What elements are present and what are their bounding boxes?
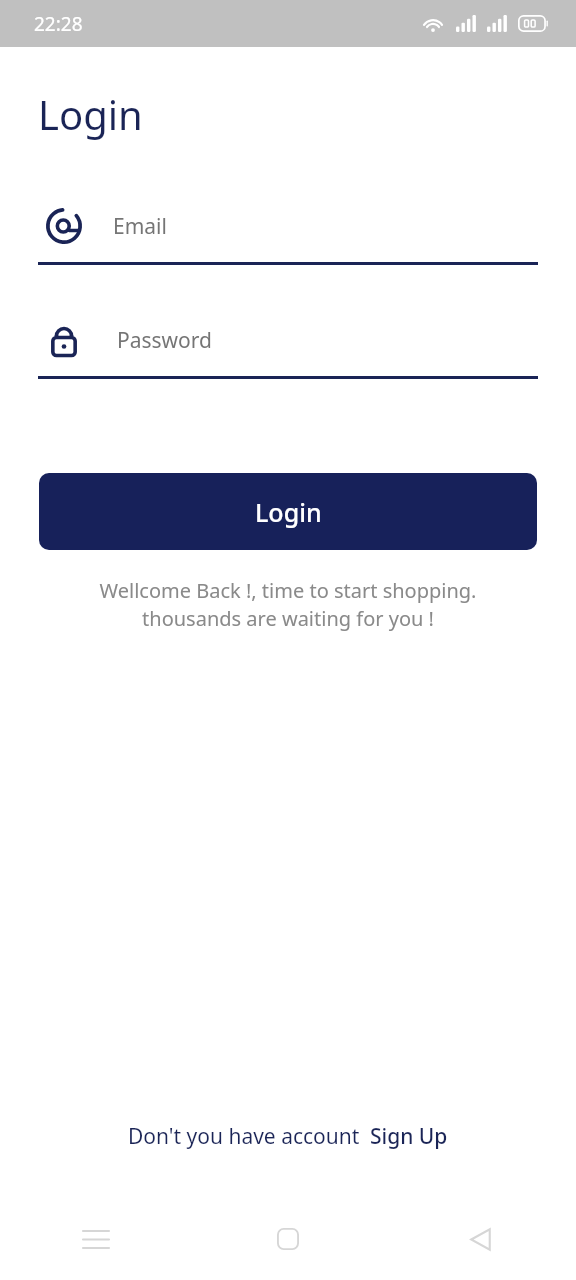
staticText: Email xyxy=(113,212,167,241)
staticText: Login xyxy=(255,495,322,529)
button[interactable]: Sign Up xyxy=(370,1122,448,1151)
staticText: Login xyxy=(38,87,143,141)
other: Email xyxy=(46,208,82,244)
button[interactable]: Password xyxy=(0,317,576,379)
button[interactable]: Don't you have account xyxy=(128,1122,360,1151)
button[interactable]: Back xyxy=(384,1208,576,1270)
staticText: Wellcome Back !, time to start shopping.… xyxy=(30,577,546,632)
other: Password xyxy=(46,322,82,358)
button[interactable]: Recent apps xyxy=(0,1208,192,1270)
staticText: 22:28 xyxy=(34,11,83,37)
button[interactable]: Home xyxy=(192,1208,384,1270)
staticText: Password xyxy=(117,326,212,355)
button[interactable]: Email xyxy=(0,203,576,265)
button[interactable]: Login xyxy=(39,473,537,550)
